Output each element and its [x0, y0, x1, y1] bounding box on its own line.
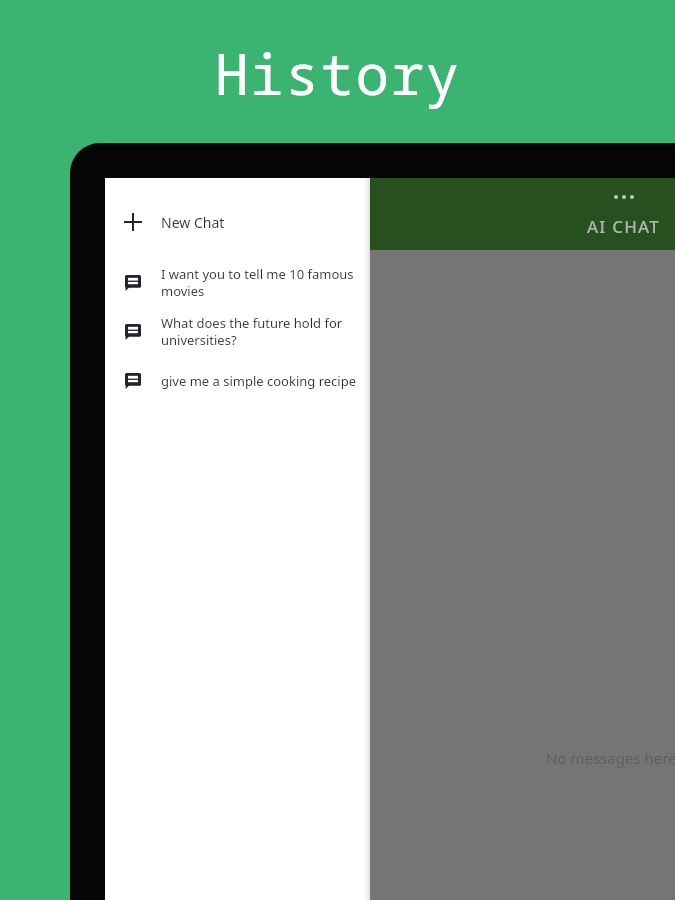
button[interactable]: Chat — [105, 356, 370, 405]
other: Chat — [125, 275, 141, 291]
button[interactable]: Chat — [105, 307, 370, 356]
other: Chat — [125, 373, 141, 389]
staticText: New Chat — [161, 213, 225, 232]
staticText: What does the future hold for universiti… — [161, 314, 361, 349]
button[interactable]: New chat — [105, 196, 370, 248]
staticText: AI CHAT — [587, 215, 660, 238]
staticText: No messages here yet — [546, 748, 675, 768]
other: Chat — [125, 324, 141, 340]
staticText: give me a simple cooking recipe — [161, 372, 357, 390]
button[interactable]: More options — [608, 189, 640, 205]
staticText: History — [215, 35, 461, 111]
button[interactable]: Chat — [105, 258, 370, 307]
other: New chat — [124, 213, 142, 231]
staticText: I want you to tell me 10 famous movies — [161, 265, 361, 300]
